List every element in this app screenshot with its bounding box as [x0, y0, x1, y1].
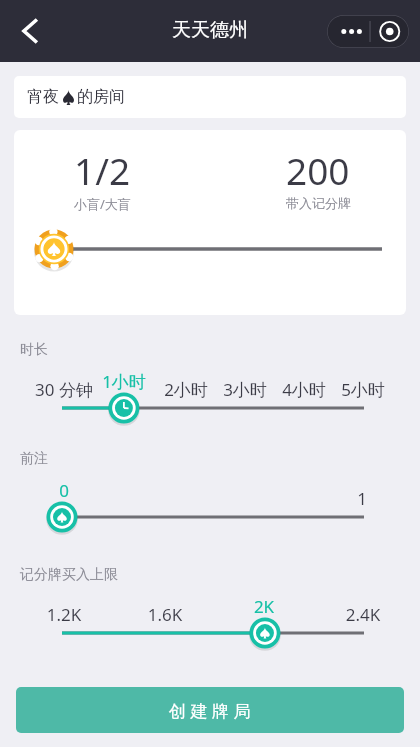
staticText: 0	[14, 479, 114, 502]
staticText: 1/2	[74, 145, 131, 195]
staticText: 的房间	[77, 87, 125, 107]
button[interactable]	[14, 228, 406, 270]
staticText: 2.4K	[313, 603, 413, 626]
staticText: 1小时	[74, 370, 174, 393]
staticText: 前注	[20, 450, 48, 468]
button[interactable]: 宵夜	[14, 76, 406, 118]
button[interactable]: 0	[0, 473, 420, 527]
button[interactable]: 创 建 牌 局	[16, 687, 404, 733]
button[interactable]: Back	[6, 8, 52, 54]
staticText: 1.6K	[115, 603, 215, 626]
staticText: 2K	[214, 595, 314, 618]
staticText: 5小时	[313, 378, 413, 401]
staticText: 时长	[20, 341, 48, 359]
staticText: 小盲/大盲	[74, 195, 131, 213]
button[interactable]: 1.2K	[0, 589, 420, 643]
staticText: 2小时	[136, 378, 236, 401]
staticText: 创 建 牌 局	[169, 699, 251, 722]
staticText: 天天德州	[172, 18, 248, 42]
button[interactable]: More options	[327, 15, 409, 48]
staticText: 3小时	[195, 378, 295, 401]
button[interactable]: 30 分钟	[0, 364, 420, 418]
staticText: 1	[312, 487, 412, 510]
staticText: 30 分钟	[14, 378, 114, 401]
staticText: 宵夜	[27, 87, 59, 107]
staticText: 200	[286, 145, 350, 195]
staticText: 记分牌买入上限	[20, 566, 118, 584]
staticText: 1.2K	[14, 603, 114, 626]
staticText: 4小时	[254, 378, 354, 401]
staticText: 带入记分牌	[286, 195, 351, 211]
